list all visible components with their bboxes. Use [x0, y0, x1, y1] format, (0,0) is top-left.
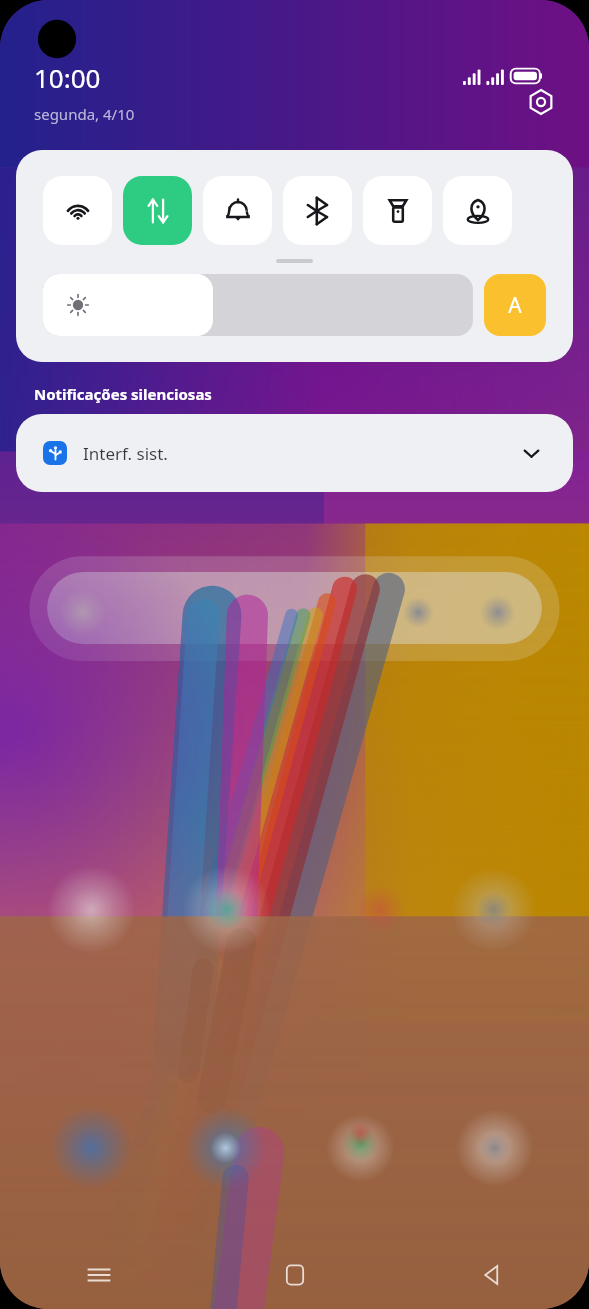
other: Expand	[516, 438, 546, 468]
button[interactable]: Interf. sist.	[16, 414, 573, 492]
button[interactable]: Wi-Fi	[43, 176, 112, 245]
button[interactable]: Location	[443, 176, 512, 245]
button[interactable]: Flashlight	[363, 176, 432, 245]
button[interactable]: Bluetooth	[283, 176, 352, 245]
staticText: A	[508, 291, 522, 320]
button[interactable]: Back	[393, 1241, 589, 1309]
button[interactable]: Home	[197, 1241, 393, 1309]
staticText: Interf. sist.	[83, 442, 168, 465]
staticText: Notificações silenciosas	[34, 384, 212, 404]
button[interactable]: Recents	[0, 1241, 197, 1309]
button[interactable]: A	[484, 274, 546, 336]
button[interactable]: Brightness	[43, 274, 473, 336]
staticText: segunda, 4/10	[34, 104, 135, 124]
staticText: 10:00	[34, 60, 101, 95]
button[interactable]: Ring mode	[203, 176, 272, 245]
button[interactable]: Settings	[519, 80, 563, 124]
button[interactable]: Mobile data	[123, 176, 192, 245]
